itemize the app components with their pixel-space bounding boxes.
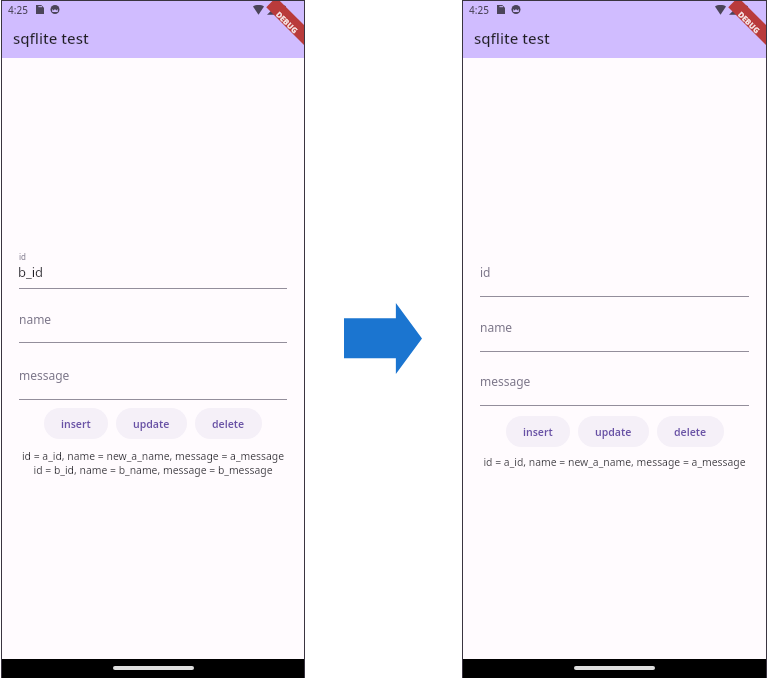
staticText: id = b_id, name = b_name, message = b_me… xyxy=(1,463,305,477)
staticText: id = a_id, name = new_a_name, message = … xyxy=(462,455,767,469)
button[interactable]: Text field xyxy=(462,361,767,406)
other: Next step xyxy=(344,303,422,374)
staticText: DEBUG xyxy=(274,9,300,35)
staticText: id xyxy=(19,251,26,262)
staticText: delete xyxy=(674,425,707,439)
staticText: update xyxy=(595,425,632,439)
button[interactable]: update xyxy=(578,416,649,447)
staticText: sqflite test xyxy=(13,28,89,48)
staticText: 4:25 xyxy=(469,3,489,17)
staticText: message xyxy=(480,373,531,389)
staticText: message xyxy=(19,367,70,383)
button[interactable]: Text field xyxy=(1,244,305,289)
button[interactable]: delete xyxy=(195,408,262,439)
staticText: name xyxy=(480,319,513,335)
staticText: insert xyxy=(61,417,91,431)
staticText: id xyxy=(480,264,491,280)
staticText: b_id xyxy=(18,263,44,281)
button[interactable]: update xyxy=(116,408,187,439)
button[interactable]: insert xyxy=(44,408,108,439)
staticText: sqflite test xyxy=(474,28,550,48)
staticText: update xyxy=(133,417,170,431)
button[interactable]: Text field xyxy=(462,307,767,352)
staticText: 4:25 xyxy=(8,3,28,17)
button[interactable]: Text field xyxy=(1,298,305,343)
staticText: DEBUG xyxy=(736,9,762,35)
staticText: id = a_id, name = new_a_name, message = … xyxy=(1,449,305,463)
staticText: delete xyxy=(212,417,245,431)
button[interactable]: Text field xyxy=(1,355,305,400)
staticText: name xyxy=(19,311,52,327)
button[interactable]: Text field xyxy=(462,252,767,297)
button[interactable]: delete xyxy=(657,416,724,447)
button[interactable]: insert xyxy=(506,416,570,447)
staticText: insert xyxy=(523,425,553,439)
